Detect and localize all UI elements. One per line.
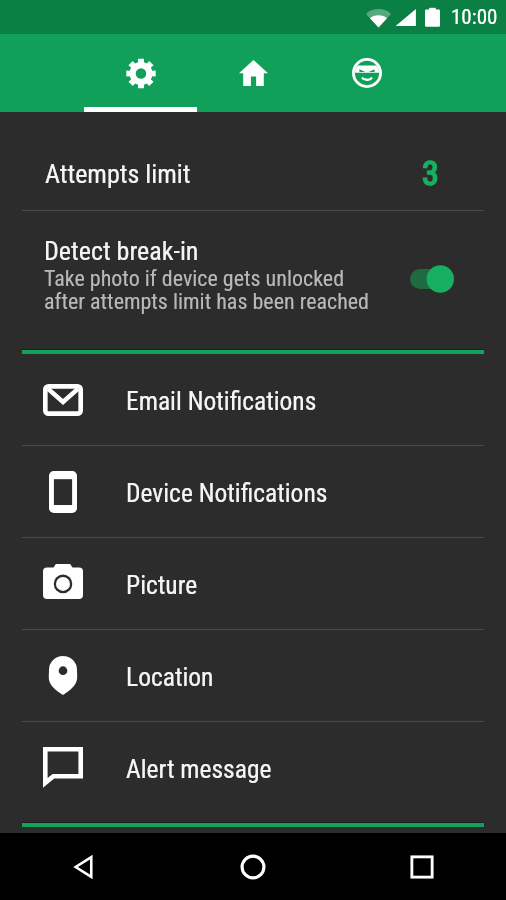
staticText: 10:00 [451,5,498,30]
button[interactable]: Settings [84,34,197,112]
button[interactable]: Attempts limit [0,112,506,210]
staticText: Detect break-in [44,236,199,266]
staticText: Email Notifications [126,386,317,416]
button[interactable]: Detect break-in [0,211,506,349]
staticText: Picture [126,570,198,600]
button[interactable]: Picture [0,538,506,629]
button[interactable]: Location [0,630,506,721]
button[interactable]: Detect break-in toggle [402,258,462,302]
button[interactable]: Device Notifications [0,446,506,537]
button[interactable]: Intruder [310,34,423,112]
button[interactable]: Home [168,833,337,900]
button[interactable]: Email Notifications [0,354,506,445]
button[interactable]: Home [197,34,310,112]
button[interactable]: Alert message [0,722,506,813]
button[interactable]: Back [0,833,168,900]
staticText: Attempts limit [45,159,191,189]
button[interactable]: Recents [337,833,506,900]
staticText: Alert message [126,754,272,784]
staticText: Device Notifications [126,478,328,508]
staticText: Take photo if device gets unlocked after… [44,266,370,314]
staticText: 3 [422,153,439,193]
staticText: Location [126,662,214,692]
staticText: 3 [422,153,439,193]
